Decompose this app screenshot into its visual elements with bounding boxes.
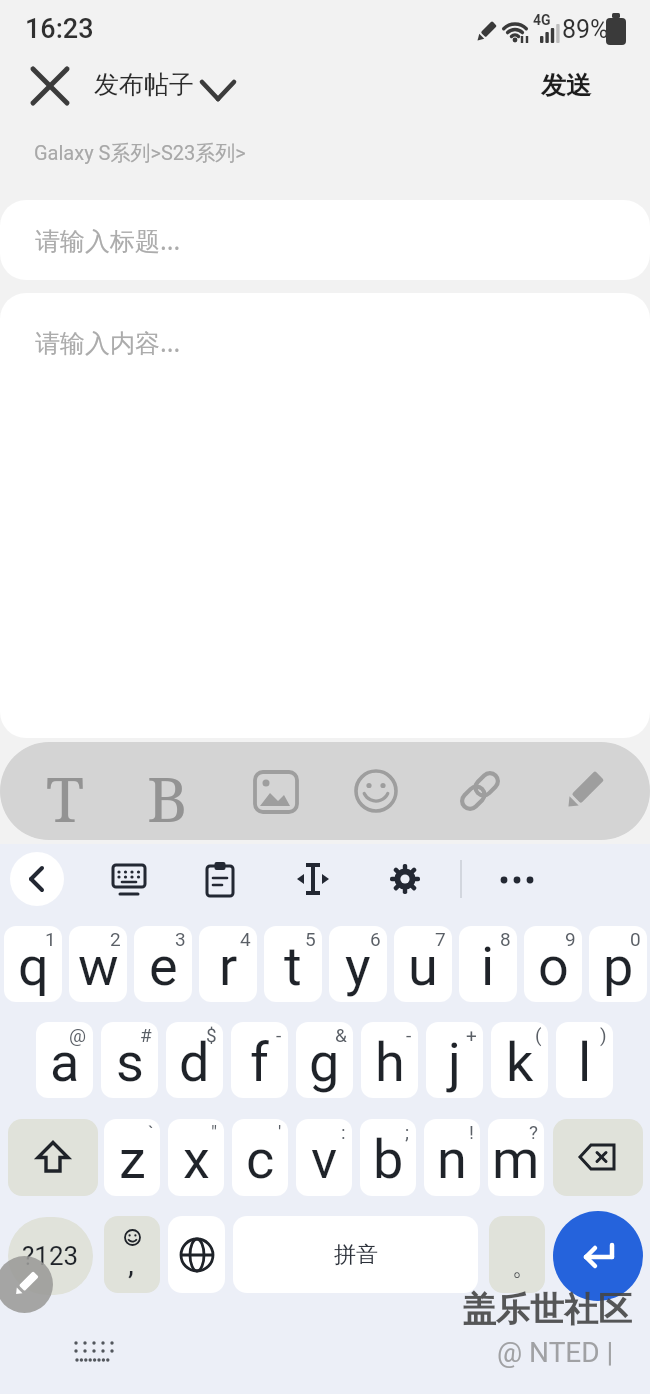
staticText: 9: [565, 928, 576, 950]
button[interactable]: 拼音: [233, 1216, 478, 1293]
staticText: 请输入内容...: [35, 325, 181, 359]
staticText: s: [116, 1031, 144, 1094]
staticText: g: [309, 1031, 340, 1094]
button[interactable]: [168, 1216, 225, 1293]
button[interactable]: [22, 60, 76, 112]
button[interactable]: j: [426, 1022, 483, 1098]
staticText: 89%: [562, 15, 609, 44]
staticText: 16:23: [25, 13, 94, 45]
button[interactable]: a: [36, 1022, 93, 1098]
button[interactable]: [381, 855, 429, 903]
button[interactable]: [10, 852, 64, 906]
staticText: c: [246, 1128, 275, 1191]
staticText: j: [448, 1031, 461, 1094]
staticText: ,: [128, 1246, 134, 1281]
button[interactable]: B: [132, 756, 202, 826]
staticText: 发送: [541, 70, 591, 101]
button[interactable]: e: [134, 926, 192, 1002]
staticText: r: [219, 935, 238, 998]
button[interactable]: [341, 756, 411, 826]
staticText: ': [278, 1121, 282, 1143]
staticText: l: [578, 1031, 592, 1094]
button[interactable]: 请输入内容...: [0, 293, 650, 738]
staticText: &: [335, 1024, 347, 1046]
button[interactable]: m: [488, 1119, 544, 1196]
button[interactable]: w: [69, 926, 127, 1002]
button[interactable]: g: [296, 1022, 353, 1098]
button[interactable]: [240, 756, 310, 826]
button[interactable]: h: [361, 1022, 418, 1098]
button[interactable]: 发送: [528, 60, 604, 110]
button[interactable]: y: [329, 926, 387, 1002]
button[interactable]: [8, 1119, 98, 1196]
button[interactable]: ,: [104, 1216, 160, 1293]
staticText: b: [373, 1128, 404, 1191]
button[interactable]: k: [491, 1022, 548, 1098]
button[interactable]: [445, 756, 515, 826]
button[interactable]: p: [589, 926, 647, 1002]
staticText: i: [481, 935, 495, 998]
button[interactable]: l: [556, 1022, 613, 1098]
button[interactable]: b: [360, 1119, 416, 1196]
button[interactable]: c: [232, 1119, 288, 1196]
button[interactable]: t: [264, 926, 322, 1002]
button[interactable]: [553, 1211, 643, 1301]
staticText: 7: [435, 928, 446, 950]
staticText: o: [538, 935, 569, 998]
button[interactable]: f: [231, 1022, 288, 1098]
button[interactable]: [548, 756, 618, 826]
staticText: #: [140, 1024, 152, 1046]
button[interactable]: d: [166, 1022, 223, 1098]
staticText: @ NTED |: [497, 1336, 614, 1369]
button[interactable]: v: [296, 1119, 352, 1196]
staticText: k: [506, 1031, 534, 1094]
staticText: v: [311, 1128, 338, 1191]
button[interactable]: s: [101, 1022, 158, 1098]
button[interactable]: [289, 855, 337, 903]
staticText: z: [119, 1128, 146, 1191]
button[interactable]: n: [424, 1119, 480, 1196]
staticText: 5: [305, 928, 316, 950]
staticText: 4G: [533, 12, 551, 28]
button[interactable]: ?123: [8, 1217, 93, 1295]
staticText: e: [149, 935, 178, 998]
staticText: B: [147, 756, 188, 826]
staticText: u: [408, 935, 438, 998]
staticText: 请输入标题...: [35, 223, 181, 257]
button[interactable]: 。: [489, 1216, 545, 1293]
button[interactable]: T: [30, 756, 100, 826]
staticText: n: [437, 1128, 467, 1191]
staticText: 0: [630, 928, 641, 950]
button[interactable]: 请输入标题...: [0, 200, 650, 280]
button[interactable]: 发布帖子: [94, 62, 244, 110]
staticText: `: [148, 1121, 154, 1143]
staticText: !: [469, 1121, 474, 1143]
staticText: -: [406, 1024, 412, 1046]
button[interactable]: r: [199, 926, 257, 1002]
button[interactable]: [0, 1256, 53, 1313]
button[interactable]: q: [4, 926, 62, 1002]
button[interactable]: u: [394, 926, 452, 1002]
button[interactable]: i: [459, 926, 517, 1002]
button[interactable]: [105, 855, 153, 903]
staticText: d: [179, 1031, 210, 1094]
staticText: @: [69, 1024, 87, 1046]
staticText: T: [46, 756, 85, 826]
button[interactable]: z: [104, 1119, 160, 1196]
button[interactable]: x: [168, 1119, 224, 1196]
staticText: 。: [512, 1252, 536, 1282]
staticText: w: [78, 935, 119, 998]
staticText: ?123: [22, 1241, 79, 1271]
button[interactable]: [553, 1119, 643, 1196]
button[interactable]: [196, 855, 244, 903]
staticText: 2: [110, 928, 121, 950]
button[interactable]: o: [524, 926, 582, 1002]
staticText: (: [535, 1024, 542, 1046]
staticText: y: [345, 935, 371, 998]
button[interactable]: [494, 855, 546, 903]
staticText: -: [276, 1024, 282, 1046]
staticText: x: [183, 1128, 210, 1191]
staticText: f: [250, 1031, 269, 1094]
staticText: $: [206, 1024, 217, 1046]
staticText: ": [211, 1121, 218, 1143]
